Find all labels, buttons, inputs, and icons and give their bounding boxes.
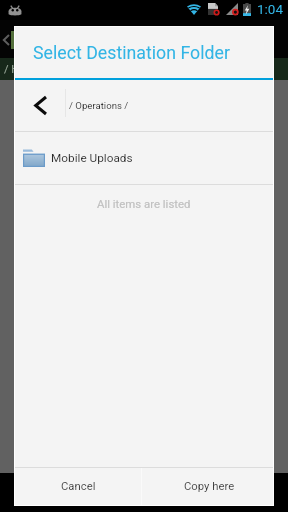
button[interactable]: Mobile Uploads [15,132,273,184]
staticText: / Home [4,63,41,76]
staticText: Mobile Uploads [51,151,133,165]
staticText: 1:04 [257,1,284,17]
staticText: Copy here [184,480,235,493]
staticText: Select Destination Folder [33,43,230,64]
staticText: Cancel [61,480,96,493]
button[interactable]: Copy here [142,468,273,505]
staticText: / Operations / [69,100,129,111]
other: Up one folder [15,80,65,131]
button[interactable]: Up one folder [15,80,273,131]
staticText: All items are listed [97,197,191,210]
button[interactable]: Cancel [15,468,141,505]
